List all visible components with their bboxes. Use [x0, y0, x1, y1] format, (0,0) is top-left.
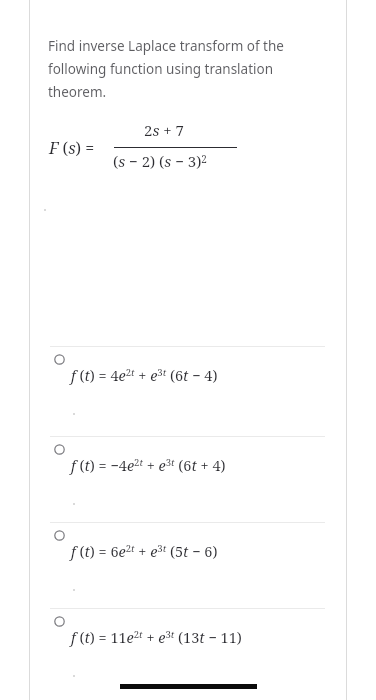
- staticText: f (t) = 6e2t + e3t (5t − 6): [71, 541, 218, 561]
- staticText: (s − 2) (s − 3)2: [113, 151, 207, 171]
- staticText: F (s) =: [49, 137, 95, 159]
- other: Select answer option 2: [54, 444, 65, 455]
- other: Select answer option 4: [54, 616, 65, 627]
- staticText: f (t) = −4e2t + e3t (6t + 4): [71, 455, 226, 475]
- other: Select answer option 3: [54, 530, 65, 541]
- staticText: f (t) = 4e2t + e3t (6t − 4): [71, 365, 218, 385]
- button[interactable]: Select answer option 3: [50, 530, 325, 604]
- staticText: 2s + 7: [144, 120, 184, 140]
- button[interactable]: Select answer option 1: [50, 354, 325, 428]
- button[interactable]: Select answer option 4: [50, 616, 325, 690]
- button[interactable]: Select answer option 2: [50, 444, 325, 518]
- staticText: Find inverse Laplace transform of the fo…: [48, 37, 314, 101]
- other: Select answer option 1: [54, 354, 65, 365]
- staticText: f (t) = 11e2t + e3t (13t − 11): [71, 627, 242, 647]
